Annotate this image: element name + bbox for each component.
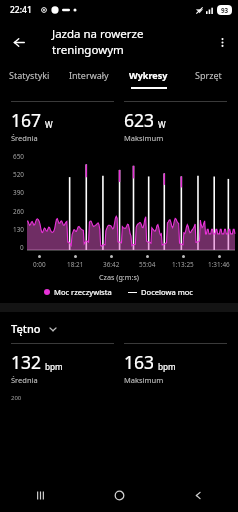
staticText: 167 xyxy=(11,108,42,132)
button[interactable]: Moc rzeczywista xyxy=(44,287,112,297)
staticText: Statystyki xyxy=(9,69,50,81)
staticText: Maksimum xyxy=(124,375,164,385)
staticText: W xyxy=(45,119,53,130)
button[interactable]: Statystyki xyxy=(0,64,59,94)
staticText: 163 xyxy=(124,350,155,374)
staticText: 0 xyxy=(20,243,24,252)
staticText: 132 xyxy=(11,350,42,374)
button[interactable]: Docelowa moc xyxy=(128,287,194,297)
staticText: 22:41 xyxy=(10,4,32,16)
staticText: 130 xyxy=(13,225,24,234)
staticText: 55:04 xyxy=(139,260,156,269)
staticText: 1:31:46 xyxy=(208,260,230,269)
staticText: Średnia xyxy=(11,133,38,143)
staticText: Moc rzeczywista xyxy=(54,287,112,297)
button[interactable]: Wykresy xyxy=(118,64,178,94)
button[interactable]: 623 xyxy=(124,108,227,143)
button[interactable]: More options xyxy=(209,29,235,55)
staticText: Średnia xyxy=(11,375,38,385)
button[interactable]: 163 xyxy=(124,350,227,385)
button[interactable]: Back xyxy=(159,478,238,512)
staticText: Jazda na rowerze xyxy=(52,26,144,42)
staticText: Wykresy xyxy=(129,69,168,81)
button[interactable]: Recent apps xyxy=(0,478,80,512)
staticText: 650 xyxy=(13,152,24,161)
button[interactable]: Back xyxy=(4,27,34,57)
button[interactable]: Sprzęt xyxy=(178,64,238,94)
button[interactable]: Interwały xyxy=(59,64,118,94)
staticText: treningowym xyxy=(52,42,124,58)
staticText: Maksimum xyxy=(124,133,164,143)
button[interactable]: Home xyxy=(80,478,159,512)
staticText: Interwały xyxy=(69,69,109,81)
button[interactable]: Tętno xyxy=(11,321,227,336)
staticText: W xyxy=(158,119,166,130)
staticText: 260 xyxy=(13,207,24,216)
staticText: Czas (g:m:s) xyxy=(0,272,238,282)
staticText: bpm xyxy=(45,361,63,372)
staticText: 36:42 xyxy=(103,260,120,269)
staticText: Tętno xyxy=(11,321,41,336)
staticText: 390 xyxy=(13,188,24,197)
staticText: 623 xyxy=(124,108,155,132)
staticText: Docelowa moc xyxy=(141,287,194,297)
staticText: 520 xyxy=(13,170,24,179)
staticText: 0:00 xyxy=(33,260,46,269)
staticText: 18:21 xyxy=(67,260,84,269)
staticText: bpm xyxy=(158,361,176,372)
staticText: 1:13:25 xyxy=(172,260,194,269)
staticText: 200 xyxy=(11,394,22,402)
staticText: Sprzęt xyxy=(195,69,222,81)
staticText: 93 xyxy=(221,6,229,15)
button[interactable]: 167 xyxy=(11,108,114,143)
button[interactable]: 132 xyxy=(11,350,114,385)
